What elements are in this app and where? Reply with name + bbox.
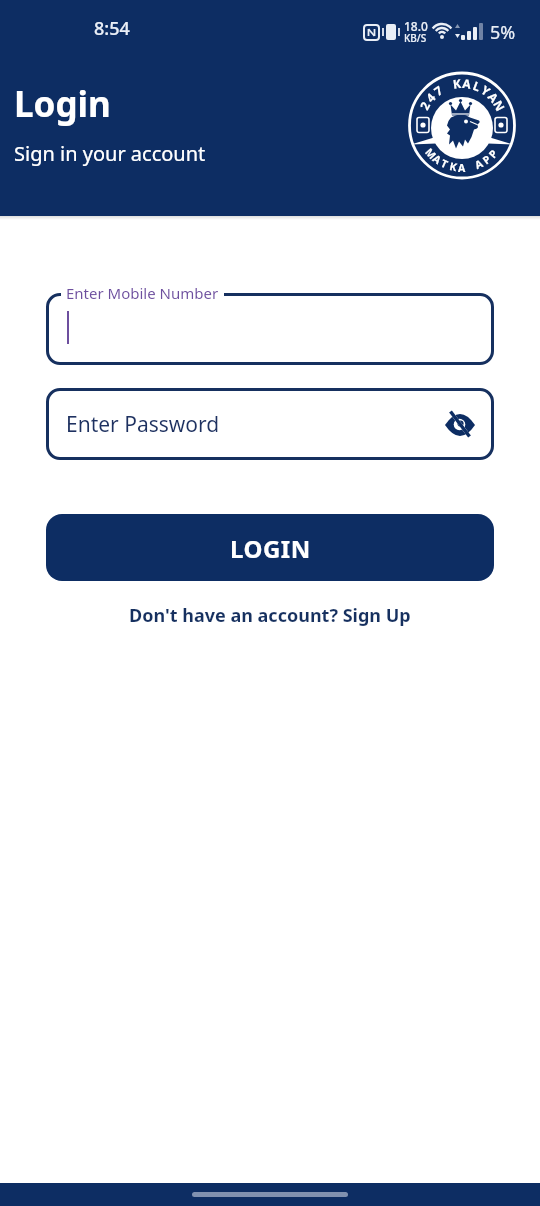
staticText: Don't have an account? Sign Up — [129, 603, 411, 628]
staticText: LOGIN — [230, 532, 311, 565]
staticText: 8:54 — [94, 16, 130, 41]
staticText: Enter Password — [66, 410, 220, 439]
button[interactable]: Don't have an account? Sign Up — [0, 603, 540, 628]
button[interactable] — [46, 293, 494, 365]
staticText: Enter Mobile Number — [66, 283, 219, 303]
button[interactable]: LOGIN — [46, 514, 494, 581]
button[interactable]: Enter Password — [46, 388, 494, 460]
staticText: Login — [14, 80, 111, 128]
staticText: Sign in your account — [14, 140, 206, 167]
